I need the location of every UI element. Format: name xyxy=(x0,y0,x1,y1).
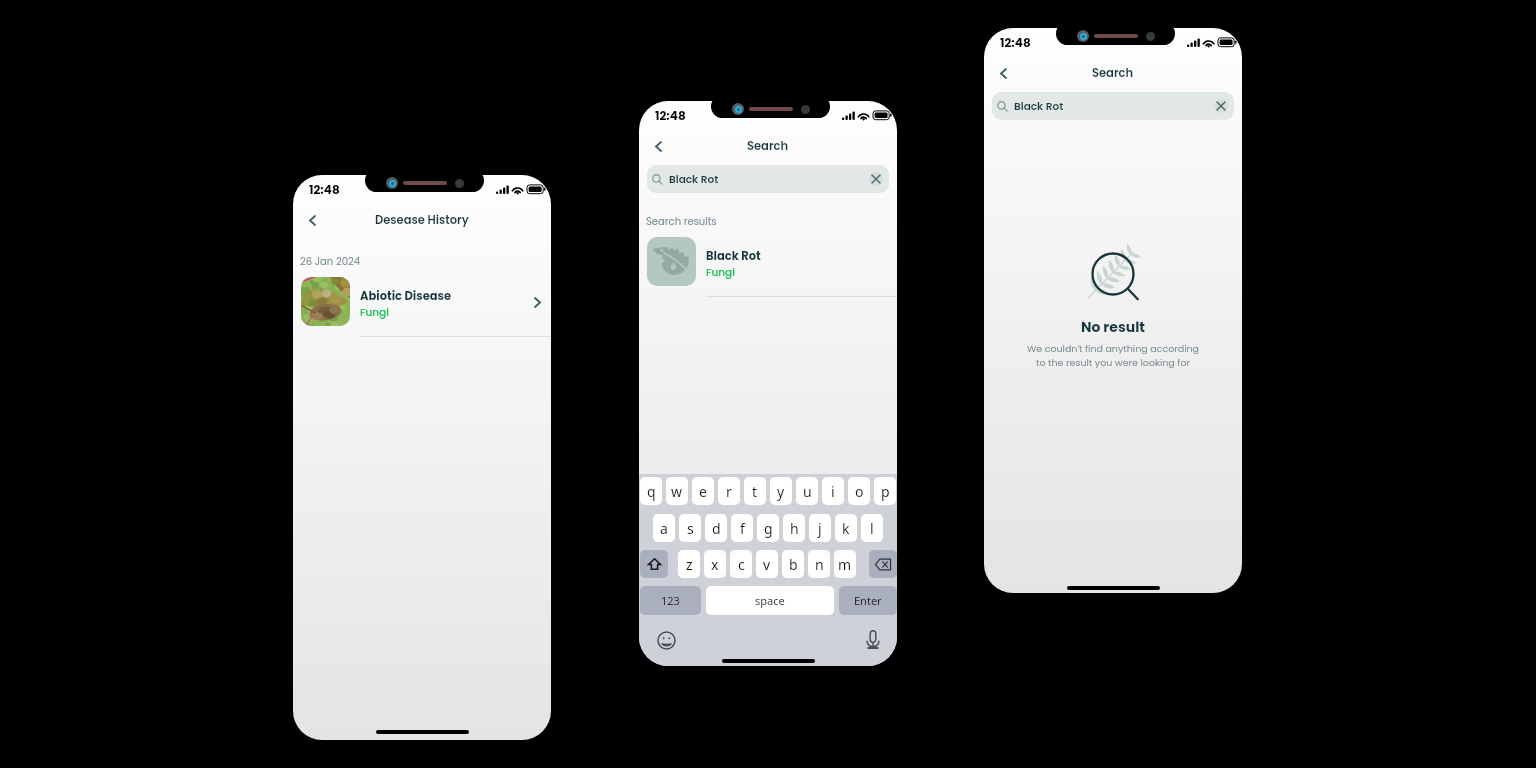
button[interactable]: l xyxy=(861,514,883,542)
button[interactable]: u xyxy=(796,477,818,505)
staticText: r xyxy=(726,482,732,501)
button[interactable]: Backspace xyxy=(869,550,897,578)
button[interactable]: m xyxy=(834,550,856,578)
staticText: Fungi xyxy=(360,305,389,320)
staticText: w xyxy=(671,482,683,501)
button[interactable]: c xyxy=(730,550,752,578)
staticText: space xyxy=(755,593,785,608)
button[interactable]: Back xyxy=(990,60,1016,86)
button[interactable]: Clear search xyxy=(869,172,883,186)
button[interactable]: q xyxy=(640,477,662,505)
staticText: k xyxy=(842,519,850,538)
staticText: e xyxy=(699,482,707,501)
button[interactable]: j xyxy=(809,514,831,542)
staticText: t xyxy=(752,482,758,501)
button[interactable]: Clear search xyxy=(1214,99,1228,113)
button[interactable]: o xyxy=(848,477,870,505)
button[interactable]: t xyxy=(744,477,766,505)
staticText: m xyxy=(838,555,852,574)
staticText: g xyxy=(764,519,773,538)
button[interactable]: Voice input xyxy=(866,630,880,650)
button[interactable]: Shift xyxy=(640,550,668,578)
staticText: 12:48 xyxy=(309,181,340,198)
staticText: 12:48 xyxy=(1000,34,1031,51)
staticText: p xyxy=(881,482,890,501)
button[interactable]: 123 xyxy=(640,586,701,615)
staticText: Search results xyxy=(646,214,717,228)
button[interactable]: z xyxy=(678,550,700,578)
staticText: o xyxy=(855,482,864,501)
staticText: j xyxy=(818,519,822,538)
button[interactable]: f xyxy=(731,514,753,542)
staticText: x xyxy=(711,555,719,574)
staticText: Black Rot xyxy=(706,248,761,264)
staticText: b xyxy=(789,555,798,574)
staticText: 12:48 xyxy=(655,107,686,124)
staticText: h xyxy=(790,519,799,538)
staticText: n xyxy=(815,555,824,574)
staticText: q xyxy=(647,482,656,501)
button[interactable]: b xyxy=(782,550,804,578)
staticText: i xyxy=(831,482,835,501)
button[interactable]: i xyxy=(822,477,844,505)
staticText: Desease History xyxy=(375,212,469,228)
staticText: Fungi xyxy=(706,265,735,280)
button[interactable]: Enter xyxy=(839,586,897,615)
staticText: v xyxy=(763,555,771,574)
button[interactable]: space xyxy=(706,586,834,615)
staticText: s xyxy=(687,519,694,538)
button[interactable]: Emoji keyboard xyxy=(657,631,676,650)
button[interactable]: p xyxy=(874,477,896,505)
button[interactable]: y xyxy=(770,477,792,505)
button[interactable]: e xyxy=(692,477,714,505)
staticText: u xyxy=(803,482,812,501)
button[interactable]: d xyxy=(705,514,727,542)
staticText: 123 xyxy=(661,593,680,608)
staticText: Black Rot xyxy=(669,172,719,187)
staticText: Abiotic Disease xyxy=(360,288,452,304)
button[interactable]: Black Rot xyxy=(647,165,889,193)
staticText: c xyxy=(738,555,745,574)
staticText: l xyxy=(870,519,874,538)
button[interactable]: Back xyxy=(645,133,671,159)
staticText: Search xyxy=(747,138,789,154)
button[interactable]: Abiotic Disease xyxy=(293,277,551,326)
staticText: d xyxy=(712,519,721,538)
button[interactable]: n xyxy=(808,550,830,578)
staticText: a xyxy=(660,519,668,538)
button[interactable]: Open details xyxy=(529,294,545,310)
button[interactable]: s xyxy=(679,514,701,542)
button[interactable]: r xyxy=(718,477,740,505)
button[interactable]: Black Rot xyxy=(639,237,897,286)
staticText: z xyxy=(686,555,693,574)
staticText: f xyxy=(740,519,745,538)
button[interactable]: a xyxy=(653,514,675,542)
button[interactable]: Back xyxy=(299,207,325,233)
button[interactable]: g xyxy=(757,514,779,542)
staticText: We couldn't find anything according to t… xyxy=(984,342,1242,370)
button[interactable]: Black Rot xyxy=(992,92,1234,120)
button[interactable]: h xyxy=(783,514,805,542)
staticText: y xyxy=(777,482,785,501)
staticText: 26 Jan 2024 xyxy=(300,254,360,268)
button[interactable]: w xyxy=(666,477,688,505)
staticText: No result xyxy=(984,317,1242,337)
staticText: Enter xyxy=(854,593,882,608)
button[interactable]: k xyxy=(835,514,857,542)
staticText: Search xyxy=(1092,65,1134,81)
button[interactable]: v xyxy=(756,550,778,578)
staticText: Black Rot xyxy=(1014,99,1064,114)
button[interactable]: x xyxy=(704,550,726,578)
